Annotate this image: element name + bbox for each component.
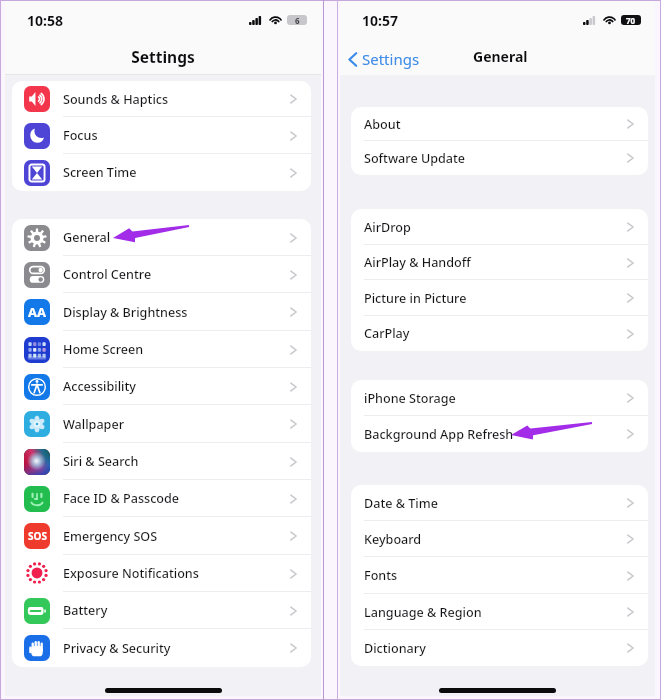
staticText: Background App Refresh — [364, 426, 514, 443]
staticText: Siri & Search — [63, 453, 139, 470]
staticText: Home Screen — [63, 341, 144, 358]
button[interactable]: AirPlay & Handoff — [351, 245, 648, 280]
button[interactable]: Face ID & Passcode — [12, 480, 311, 517]
staticText: Accessibility — [63, 378, 136, 395]
staticText: Wallpaper — [63, 416, 124, 433]
staticText: 10:57 — [362, 11, 398, 30]
button[interactable]: SOS — [12, 517, 311, 555]
button[interactable]: General — [12, 219, 311, 256]
staticText: Sounds & Haptics — [63, 91, 169, 108]
button[interactable]: AirDrop — [351, 209, 648, 245]
button[interactable]: CarPlay — [351, 316, 648, 351]
staticText: Emergency SOS — [63, 528, 158, 545]
button[interactable]: Sounds & Haptics — [12, 81, 311, 117]
staticText: Screen Time — [63, 164, 137, 181]
button[interactable]: About — [351, 107, 648, 141]
staticText: Date & Time — [364, 495, 438, 512]
staticText: Dictionary — [364, 640, 426, 657]
staticText: 70 — [626, 15, 636, 25]
staticText: Exposure Notifications — [63, 565, 199, 582]
staticText: CarPlay — [364, 325, 410, 342]
staticText: Picture in Picture — [364, 290, 467, 307]
button[interactable]: Focus — [12, 117, 311, 154]
staticText: Fonts — [364, 567, 398, 584]
button[interactable]: Siri & Search — [12, 443, 311, 480]
button[interactable]: Home Screen — [12, 331, 311, 368]
staticText: Face ID & Passcode — [63, 490, 180, 507]
button[interactable]: Wallpaper — [12, 405, 311, 443]
button[interactable]: iPhone Storage — [351, 380, 648, 416]
button[interactable]: Screen Time — [12, 154, 311, 191]
staticText: 10:58 — [27, 11, 63, 30]
button[interactable]: Software Update — [351, 141, 648, 175]
staticText: Keyboard — [364, 531, 422, 548]
button[interactable]: Fonts — [351, 557, 648, 594]
button[interactable]: AA — [12, 293, 311, 331]
staticText: Software Update — [364, 150, 466, 167]
staticText: Display & Brightness — [63, 304, 188, 321]
staticText: Privacy & Security — [63, 640, 171, 657]
button[interactable]: Privacy & Security — [12, 629, 311, 667]
button[interactable]: Picture in Picture — [351, 280, 648, 316]
button[interactable]: Language & Region — [351, 594, 648, 630]
button[interactable]: Battery — [12, 592, 311, 629]
button[interactable]: Control Centre — [12, 256, 311, 293]
staticText: General — [473, 47, 528, 66]
button[interactable]: Date & Time — [351, 485, 648, 521]
staticText: 6 — [295, 15, 300, 25]
staticText: Settings — [362, 49, 420, 69]
button[interactable]: Accessibility — [12, 368, 311, 405]
staticText: AA — [28, 303, 46, 321]
staticText: Language & Region — [364, 604, 482, 621]
button[interactable]: Background App Refresh — [351, 416, 648, 452]
staticText: AirDrop — [364, 219, 411, 236]
staticText: General — [63, 229, 111, 246]
staticText: Battery — [63, 602, 108, 619]
staticText: iPhone Storage — [364, 390, 456, 407]
staticText: SOS — [28, 529, 47, 543]
button[interactable]: Settings — [348, 49, 420, 69]
button[interactable]: Keyboard — [351, 521, 648, 557]
staticText: Focus — [63, 127, 98, 144]
button[interactable]: Dictionary — [351, 630, 648, 666]
staticText: Settings — [5, 46, 321, 67]
button[interactable]: Exposure Notifications — [12, 555, 311, 592]
staticText: About — [364, 116, 401, 133]
staticText: Control Centre — [63, 266, 152, 283]
staticText: AirPlay & Handoff — [364, 254, 471, 271]
